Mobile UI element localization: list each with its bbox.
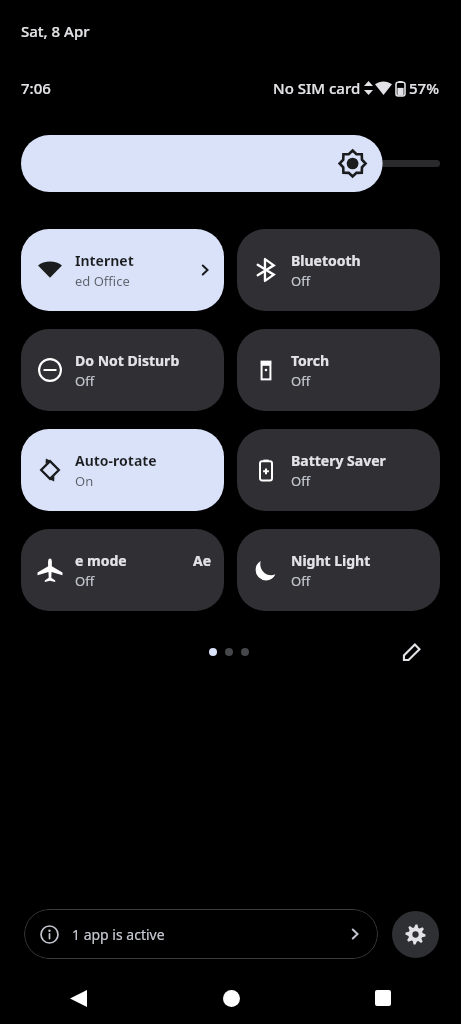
button[interactable]: Bluetooth xyxy=(237,229,440,311)
staticText: Night Light xyxy=(291,551,371,570)
staticText: Off xyxy=(291,572,311,590)
button[interactable]: Night Light xyxy=(237,529,440,611)
button[interactable]: Internet xyxy=(21,229,224,311)
button[interactable]: Back xyxy=(56,976,100,1020)
button[interactable]: Recents xyxy=(361,976,405,1020)
staticText: Sat, 8 Apr xyxy=(21,21,90,41)
button[interactable]: Settings xyxy=(392,911,439,958)
button[interactable]: Torch xyxy=(237,329,440,411)
staticText: Off xyxy=(291,272,311,290)
staticText: On xyxy=(75,472,94,490)
staticText: Auto-rotate xyxy=(75,451,157,470)
staticText: Off xyxy=(291,472,311,490)
staticText: 1 app is active xyxy=(72,925,165,944)
button[interactable]: Brightness xyxy=(21,135,440,192)
staticText: No SIM card xyxy=(273,78,361,98)
staticText: Off xyxy=(75,572,95,590)
staticText: Battery Saver xyxy=(291,451,386,470)
button[interactable]: 1 app is active xyxy=(24,909,378,959)
staticText: Internet xyxy=(75,251,134,270)
staticText: Off xyxy=(291,372,311,390)
button[interactable]: Home xyxy=(209,976,253,1020)
staticText: 57% xyxy=(409,78,439,98)
staticText: ed Office xyxy=(75,272,130,290)
staticText: Torch xyxy=(291,351,330,370)
button[interactable]: Edit tiles xyxy=(395,636,427,668)
button[interactable]: e mode xyxy=(21,529,224,611)
staticText: e mode xyxy=(75,551,127,570)
staticText: Do Not Disturb xyxy=(75,351,180,370)
button[interactable]: Do Not Disturb xyxy=(21,329,224,411)
staticText: Bluetooth xyxy=(291,251,361,270)
button[interactable]: Auto-rotate xyxy=(21,429,224,511)
staticText: 7:06 xyxy=(21,78,51,98)
staticText: Off xyxy=(75,372,95,390)
staticText: Ae xyxy=(193,551,212,570)
button[interactable]: Battery Saver xyxy=(237,429,440,511)
